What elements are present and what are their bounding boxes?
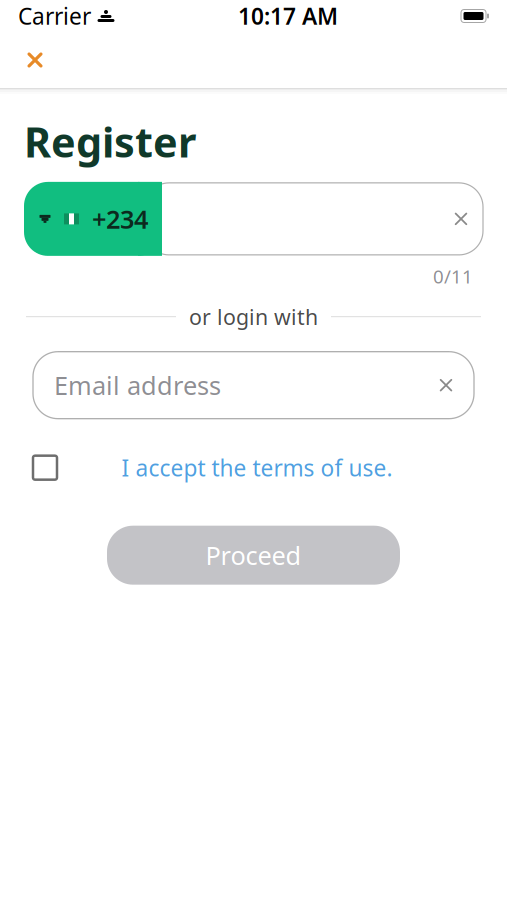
staticText: 0/11 bbox=[433, 264, 473, 289]
button[interactable]: I accept the terms of use. bbox=[117, 445, 396, 491]
staticText: +234 bbox=[92, 202, 148, 236]
button[interactable]: Select country code, Nigeria +234 bbox=[24, 182, 162, 256]
staticText: I accept the terms of use. bbox=[121, 453, 392, 483]
staticText: Carrier bbox=[18, 1, 91, 31]
staticText: or login with bbox=[189, 302, 318, 331]
staticText: Email address bbox=[54, 368, 221, 402]
staticText: Register bbox=[24, 114, 196, 169]
button[interactable]: Clear phone number bbox=[439, 197, 483, 241]
button[interactable]: Close bbox=[7, 32, 63, 88]
staticText: 10:17 AM bbox=[238, 1, 338, 31]
button[interactable]: Proceed bbox=[107, 526, 400, 585]
staticText: Proceed bbox=[205, 538, 301, 572]
button[interactable]: Accept the terms of use bbox=[23, 446, 67, 490]
button[interactable]: Clear email address bbox=[424, 363, 468, 407]
